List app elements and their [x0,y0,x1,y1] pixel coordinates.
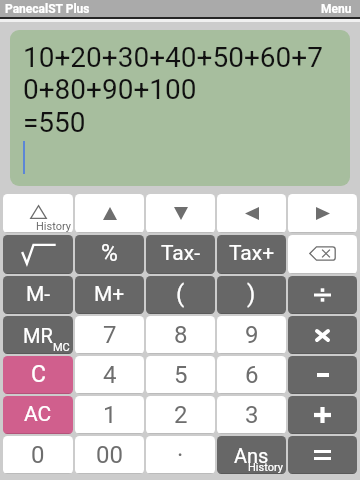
button[interactable]: Tax- [146,235,215,274]
button[interactable]: ( [146,276,215,314]
button[interactable]: 8 [146,316,215,354]
button[interactable]: MR [3,316,73,354]
button[interactable]: Move left [217,194,286,233]
button[interactable]: Move up [75,194,144,233]
staticText: M- [26,282,51,307]
staticText: ) [247,280,256,308]
staticText: ( [176,280,185,308]
staticText: 7 [103,321,117,349]
staticText: MR [23,324,53,347]
button[interactable]: Backspace [288,235,357,274]
staticText: · [177,441,184,469]
button[interactable]: 1 [75,396,144,434]
staticText: 2 [174,401,188,429]
button[interactable]: Tax+ [217,235,286,274]
staticText: 0 [31,441,45,469]
button[interactable]: Menu [313,0,360,17]
staticText: Tax+ [229,241,275,266]
staticText: =550 [23,106,86,139]
button[interactable]: Move right [288,194,357,233]
button[interactable]: 5 [146,356,215,394]
button[interactable]: Square root [3,235,73,274]
button[interactable]: 10+20+30+40+50+60+7 [10,30,350,186]
button[interactable]: History [3,194,73,233]
button[interactable]: AC [3,396,73,434]
button[interactable]: M+ [75,276,144,314]
button[interactable]: 9 [217,316,286,354]
button[interactable]: 0 [3,436,73,474]
staticText: 8 [174,321,188,349]
button[interactable]: ) [217,276,286,314]
button[interactable]: % [75,235,144,274]
staticText: 6 [245,361,259,389]
button[interactable]: Equals [288,436,357,474]
staticText: 00 [96,441,123,469]
staticText: 0+80+90+100 [23,73,197,106]
button[interactable]: · [146,436,215,474]
button[interactable]: 7 [75,316,144,354]
button[interactable]: M- [3,276,73,314]
button[interactable]: Move down [146,194,215,233]
staticText: PanecalST Plus [5,2,90,16]
button[interactable]: 6 [217,356,286,394]
button[interactable]: 2 [146,396,215,434]
staticText: M+ [94,282,125,307]
button[interactable]: Plus [288,396,357,434]
button[interactable]: Minus [288,356,357,394]
button[interactable]: 3 [217,396,286,434]
staticText: 4 [103,361,117,389]
staticText: 3 [245,401,259,429]
button[interactable]: Ans [217,436,286,474]
staticText: 5 [174,361,188,389]
staticText: Ans [234,444,269,467]
button[interactable]: 00 [75,436,144,474]
staticText: MC [53,341,70,354]
button[interactable]: Multiply [288,316,357,354]
staticText: Menu [321,2,352,16]
staticText: % [101,240,118,267]
staticText: History [36,220,71,233]
staticText: History [248,461,283,474]
button[interactable]: 4 [75,356,144,394]
staticText: 10+20+30+40+50+60+7 [23,41,323,74]
staticText: Tax- [161,241,201,266]
staticText: 9 [245,321,259,349]
staticText: C [31,361,46,388]
button[interactable]: Divide [288,276,357,314]
button[interactable]: C [3,356,73,394]
staticText: AC [24,402,52,427]
staticText: 1 [103,401,117,429]
